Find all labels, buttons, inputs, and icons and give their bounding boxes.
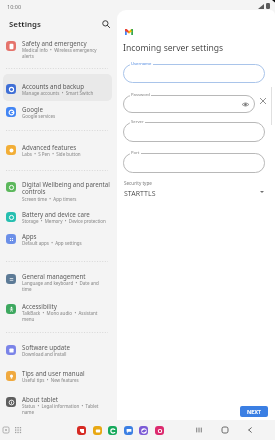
button[interactable] xyxy=(123,95,255,113)
button[interactable]: Advanced features xyxy=(2,139,115,157)
staticText: Server xyxy=(131,119,144,125)
button[interactable]: Home xyxy=(220,425,230,435)
staticText: Google xyxy=(22,105,43,113)
button[interactable]: Battery and device care xyxy=(2,206,115,224)
button[interactable]: Apps xyxy=(2,228,115,246)
staticText: Port xyxy=(131,150,140,156)
staticText: STARTTLS xyxy=(124,189,156,199)
button[interactable]: Google xyxy=(2,101,115,119)
button[interactable]: Clear password xyxy=(258,96,268,106)
button[interactable]: About tablet xyxy=(2,391,115,415)
button[interactable]: Accessibility xyxy=(2,298,115,322)
staticText: Settings xyxy=(9,19,41,30)
button[interactable] xyxy=(123,122,265,142)
staticText: Incoming server settings xyxy=(123,42,224,54)
button[interactable] xyxy=(123,64,265,83)
button[interactable]: Expand security type xyxy=(257,187,267,197)
staticText: Accessibility xyxy=(22,302,57,310)
button[interactable]: General management xyxy=(2,268,115,292)
staticText: Accounts and backup xyxy=(22,82,84,90)
button[interactable]: Keyboard xyxy=(2,426,10,434)
staticText: Useful tips • New features xyxy=(22,377,79,383)
staticText: Username xyxy=(131,61,152,67)
button[interactable]: App 3 xyxy=(108,426,117,435)
staticText: Status • Legal information • Tablet name xyxy=(22,403,99,415)
button[interactable]: Search xyxy=(99,17,112,30)
button[interactable]: App 5 xyxy=(139,426,148,435)
staticText: Labs • S Pen • Side button xyxy=(22,151,81,157)
staticText: Battery and device care xyxy=(22,210,90,218)
staticText: Google services xyxy=(22,113,56,119)
button[interactable]: App 1 xyxy=(77,426,86,435)
button[interactable] xyxy=(123,153,265,173)
staticText: General management xyxy=(22,272,86,280)
button[interactable]: Back xyxy=(245,425,255,435)
button[interactable]: Tips and user manual xyxy=(2,365,115,383)
staticText: NEXT xyxy=(247,408,262,416)
button[interactable]: NEXT xyxy=(240,406,268,417)
staticText: Digital Wellbeing and parental controls xyxy=(22,180,110,196)
staticText: Screen time • App timers xyxy=(22,196,77,202)
staticText: Security type xyxy=(124,180,152,186)
button[interactable]: App 4 xyxy=(124,426,133,435)
staticText: Password xyxy=(131,92,150,98)
button[interactable]: Software update xyxy=(2,339,115,357)
button[interactable]: Accounts and backup xyxy=(2,78,115,96)
staticText: Tips and user manual xyxy=(22,369,85,377)
staticText: Storage • Memory • Device protection xyxy=(22,218,106,224)
staticText: 10:00 xyxy=(7,3,22,10)
button[interactable]: Recents xyxy=(194,425,204,435)
staticText: Safety and emergency xyxy=(22,39,87,47)
staticText: Manage accounts • Smart Switch xyxy=(22,90,94,96)
button[interactable]: Safety and emergency xyxy=(2,35,115,59)
button[interactable]: All apps xyxy=(14,426,22,434)
button[interactable]: App 2 xyxy=(93,426,102,435)
staticText: Medical info • Wireless emergency alerts xyxy=(22,47,97,59)
button[interactable]: Digital Wellbeing and parental controls xyxy=(2,176,115,202)
staticText: TalkBack • Mono audio • Assistant menu xyxy=(22,310,98,322)
staticText: Download and install xyxy=(22,351,67,357)
staticText: Software update xyxy=(22,343,70,351)
staticText: Advanced features xyxy=(22,143,77,151)
staticText: Language and keyboard • Date and time xyxy=(22,280,99,292)
staticText: About tablet xyxy=(22,395,58,403)
staticText: Apps xyxy=(22,232,37,240)
staticText: Default apps • App settings xyxy=(22,240,82,246)
button[interactable]: App 6 xyxy=(155,426,164,435)
